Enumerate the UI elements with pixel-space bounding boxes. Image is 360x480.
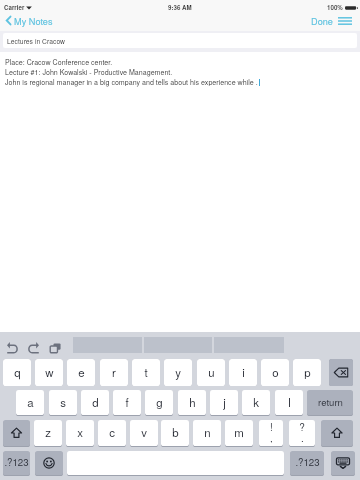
button[interactable]: Redo <box>28 343 39 353</box>
staticText: x <box>77 424 83 440</box>
staticText: 9:36 AM <box>168 3 192 12</box>
button[interactable]: Shift <box>321 420 353 446</box>
staticText: Place: Cracow Conference center. <box>5 57 113 67</box>
staticText: f <box>125 394 129 410</box>
button[interactable]: g <box>145 390 173 415</box>
button[interactable]: Undo <box>7 343 18 353</box>
button[interactable]: My Notes <box>0 14 57 27</box>
staticText: n <box>204 424 211 440</box>
staticText: a <box>27 394 34 410</box>
staticText: return <box>318 395 343 409</box>
button[interactable]: u <box>197 359 225 386</box>
button[interactable]: f <box>113 390 141 415</box>
staticText: u <box>208 364 215 380</box>
staticText: ? <box>299 420 305 434</box>
button[interactable]: h <box>178 390 206 415</box>
staticText: q <box>14 364 21 380</box>
button[interactable]: p <box>293 359 321 386</box>
staticText: Carrier <box>4 3 25 12</box>
staticText: r <box>112 364 116 380</box>
staticText: z <box>45 424 51 440</box>
staticText: s <box>60 394 66 410</box>
staticText: l <box>288 394 291 410</box>
staticText: .?123 <box>295 455 320 469</box>
staticText: t <box>144 364 148 380</box>
staticText: John is regional manager in a big compan… <box>5 77 258 87</box>
staticText: Done <box>311 14 333 27</box>
staticText: b <box>172 424 179 440</box>
button[interactable]: c <box>98 420 126 446</box>
button[interactable]: return <box>307 390 353 415</box>
button[interactable]: x <box>66 420 94 446</box>
button[interactable]: i <box>229 359 257 386</box>
button[interactable]: n <box>193 420 221 446</box>
button[interactable]: Copy <box>50 343 61 353</box>
button[interactable]: Done <box>309 12 335 29</box>
button[interactable]: k <box>242 390 270 415</box>
button[interactable]: b <box>161 420 189 446</box>
button[interactable]: ! <box>259 420 283 446</box>
staticText: i <box>242 364 245 380</box>
button[interactable]: m <box>225 420 253 446</box>
staticText: , <box>270 431 273 443</box>
button[interactable]: j <box>210 390 238 415</box>
staticText: j <box>223 394 226 410</box>
staticText: m <box>234 424 244 440</box>
button[interactable]: Lectures in Cracow <box>3 33 357 48</box>
button[interactable]: Hide keyboard <box>331 451 355 475</box>
button[interactable]: .?123 <box>290 451 324 475</box>
button[interactable]: w <box>35 359 63 386</box>
staticText: g <box>156 394 163 410</box>
button[interactable]: v <box>130 420 158 446</box>
button[interactable]: s <box>49 390 77 415</box>
button[interactable]: q <box>3 359 31 386</box>
staticText: Lecture #1: John Kowalski - Productive M… <box>5 67 173 77</box>
staticText: o <box>272 364 279 380</box>
button[interactable]: z <box>34 420 62 446</box>
button[interactable]: l <box>275 390 303 415</box>
button[interactable]: e <box>67 359 95 386</box>
button[interactable]: y <box>164 359 192 386</box>
button[interactable]: Shift <box>3 420 30 446</box>
staticText: c <box>109 424 115 440</box>
button[interactable]: r <box>100 359 128 386</box>
staticText: p <box>304 364 311 380</box>
staticText: Lectures in Cracow <box>7 36 65 46</box>
button[interactable]: t <box>132 359 160 386</box>
button[interactable]: .?123 <box>3 451 30 475</box>
staticText: 100% <box>327 3 343 12</box>
staticText: d <box>92 394 99 410</box>
staticText: y <box>175 364 181 380</box>
button[interactable]: ? <box>289 420 315 446</box>
staticText: My Notes <box>14 14 53 27</box>
staticText: ! <box>270 420 273 434</box>
staticText: e <box>78 364 85 380</box>
button[interactable]: d <box>81 390 109 415</box>
staticText: w <box>45 364 54 380</box>
staticText: k <box>253 394 259 410</box>
staticText: h <box>189 394 196 410</box>
button[interactable]: a <box>16 390 44 415</box>
staticText: v <box>141 424 147 440</box>
button[interactable]: Emoji <box>35 451 63 475</box>
button[interactable]: o <box>261 359 289 386</box>
staticText: . <box>301 431 304 443</box>
button[interactable]: Backspace <box>329 359 353 386</box>
staticText: .?123 <box>4 455 29 469</box>
button[interactable]: Menu <box>338 15 352 27</box>
